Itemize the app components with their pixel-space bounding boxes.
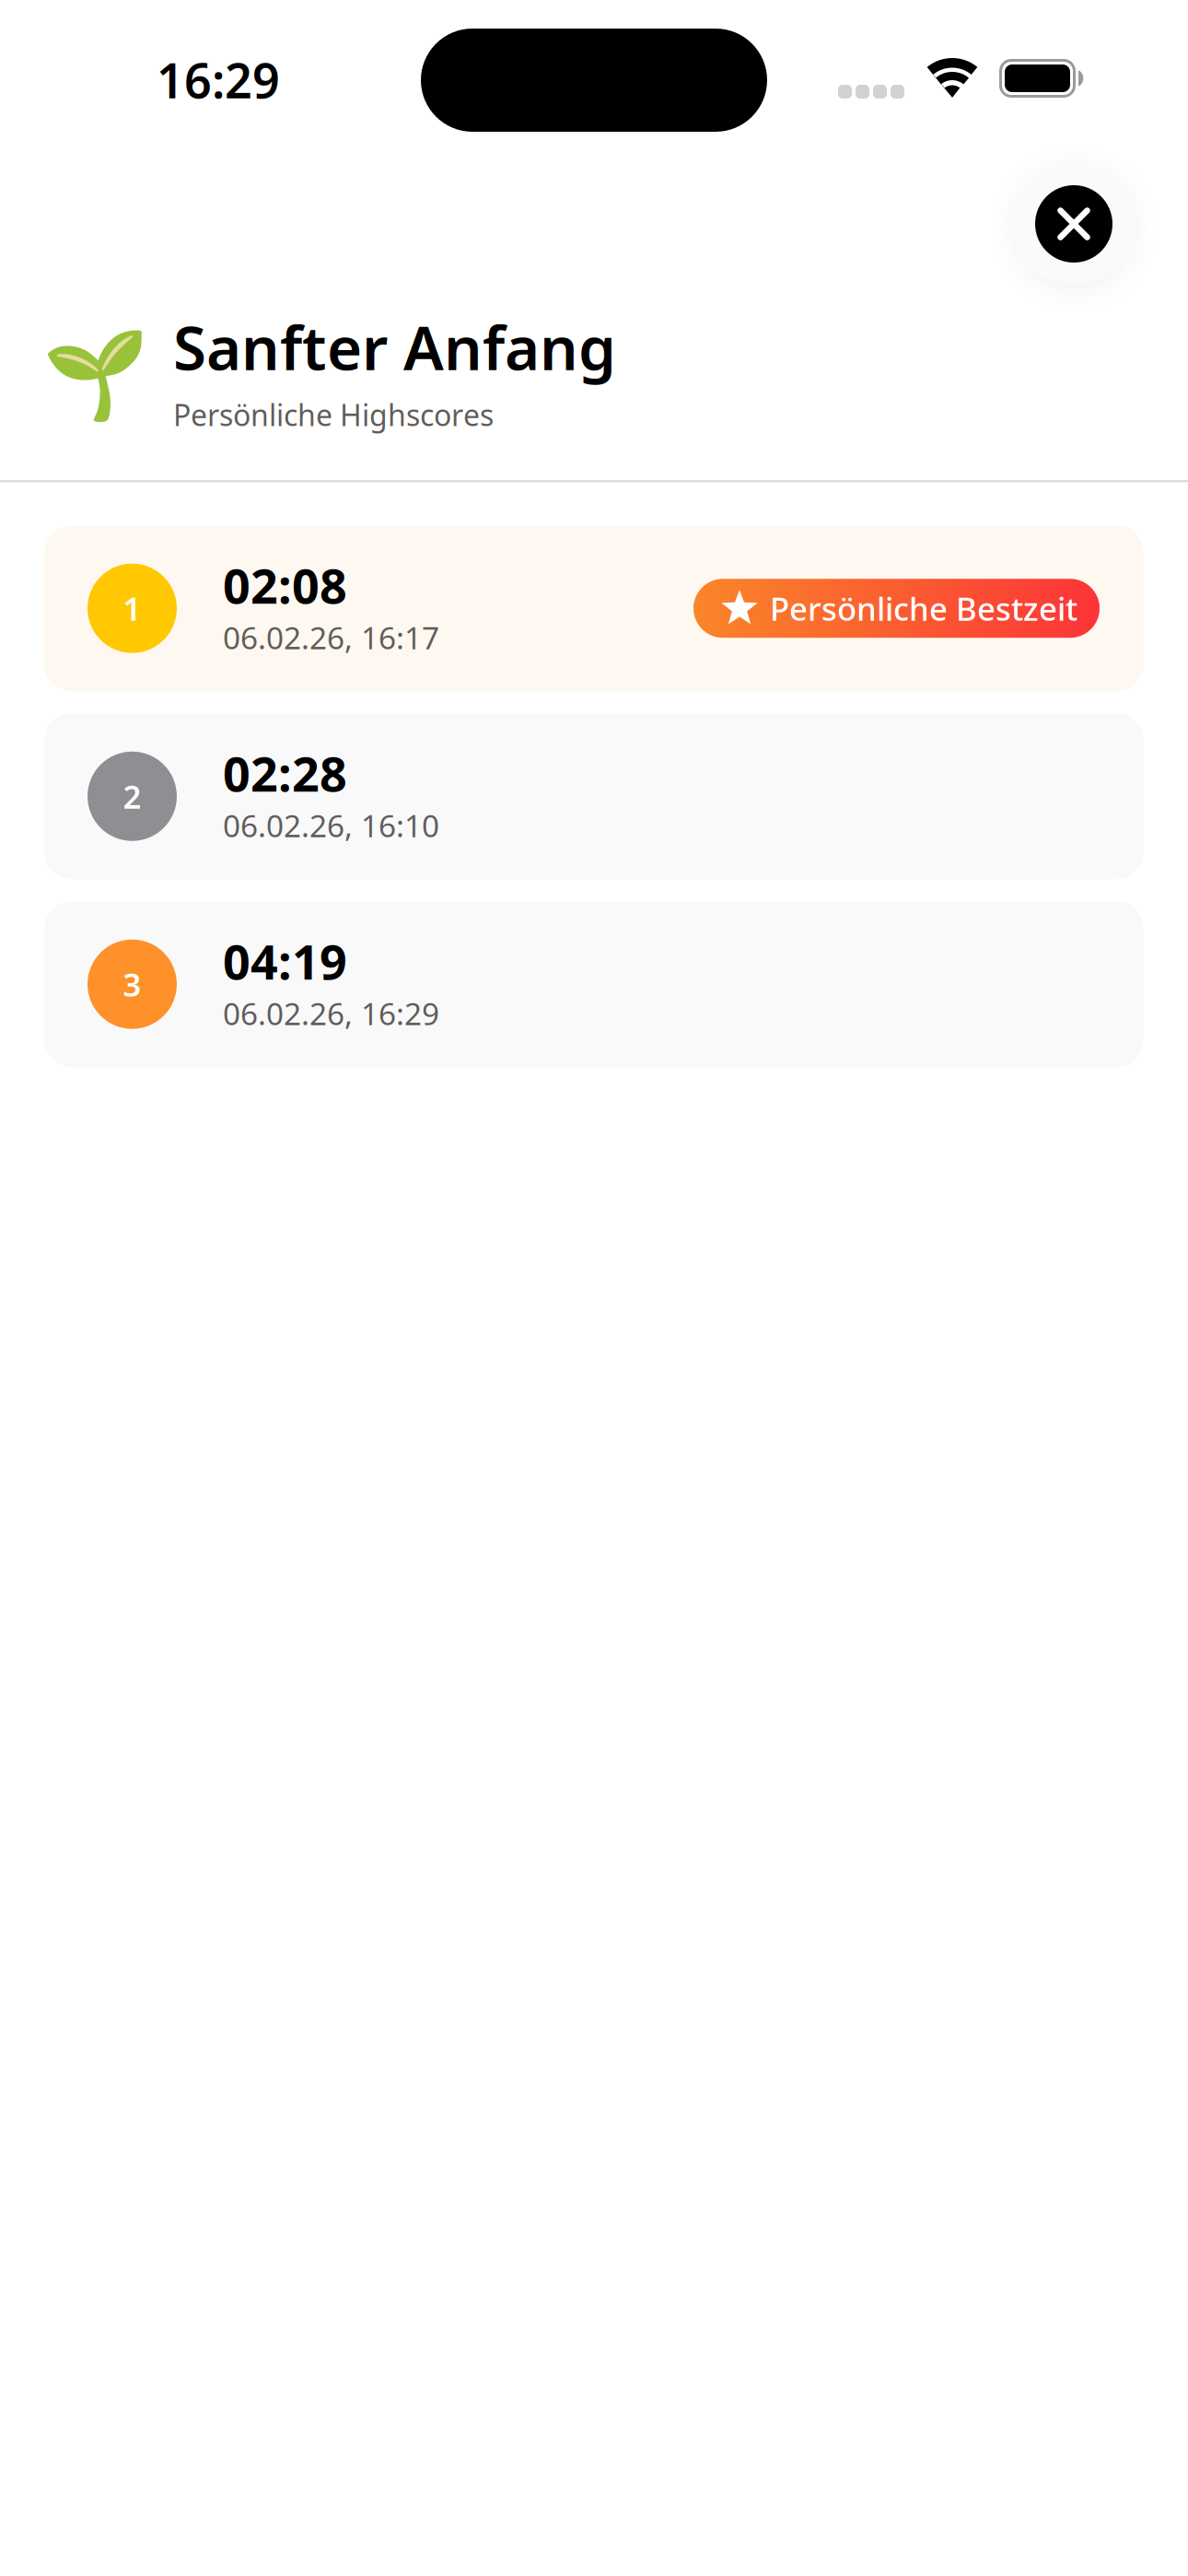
staticText: 06.02.26, 16:10 (223, 805, 439, 846)
button[interactable]: 1 (44, 525, 1144, 691)
staticText: 06.02.26, 16:29 (223, 993, 439, 1034)
staticText: Sanfter Anfang (173, 307, 616, 387)
staticText: 16:29 (157, 48, 280, 112)
staticText: 1 (123, 587, 141, 629)
staticText: 06.02.26, 16:17 (223, 617, 439, 658)
button[interactable]: Schließen (1013, 163, 1135, 285)
button[interactable]: 2 (44, 713, 1144, 879)
staticText: 3 (123, 963, 141, 1005)
staticText: 02:08 (223, 553, 347, 617)
button[interactable]: 3 (44, 901, 1144, 1067)
staticText: 2 (123, 775, 141, 817)
staticText: Persönliche Highscores (173, 395, 494, 434)
staticText: Persönliche Bestzeit (770, 587, 1077, 629)
staticText: 02:28 (223, 741, 347, 805)
staticText: 04:19 (223, 929, 347, 993)
staticText: 🌱 (42, 326, 149, 425)
